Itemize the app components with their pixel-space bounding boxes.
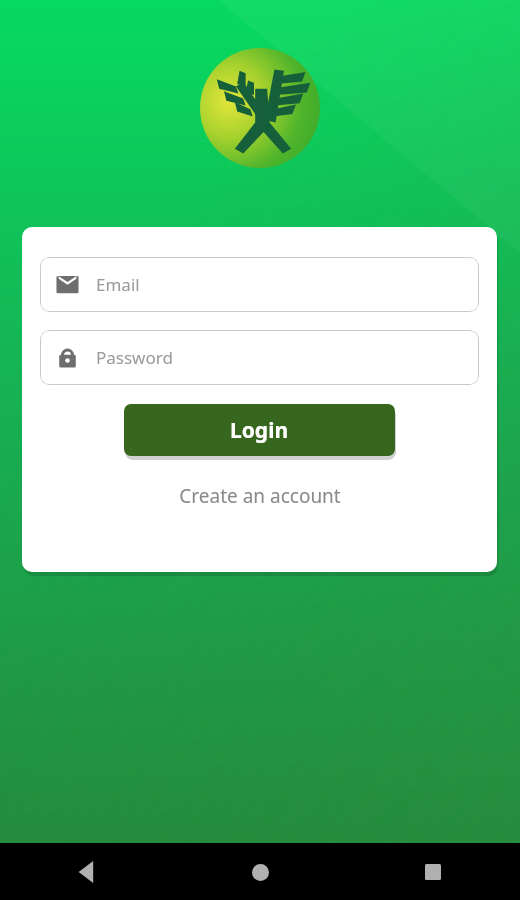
staticText: Login xyxy=(230,416,289,445)
staticText: Email xyxy=(96,273,140,296)
button[interactable]: Back xyxy=(63,848,111,896)
button[interactable]: Recent apps xyxy=(409,848,457,896)
button[interactable]: Home xyxy=(236,848,284,896)
button[interactable]: Password xyxy=(40,330,479,385)
button[interactable]: Create an account xyxy=(40,476,479,516)
button[interactable]: Email xyxy=(40,257,479,312)
button[interactable]: Login xyxy=(124,404,395,456)
staticText: Create an account xyxy=(179,483,341,509)
staticText: Password xyxy=(96,346,173,369)
